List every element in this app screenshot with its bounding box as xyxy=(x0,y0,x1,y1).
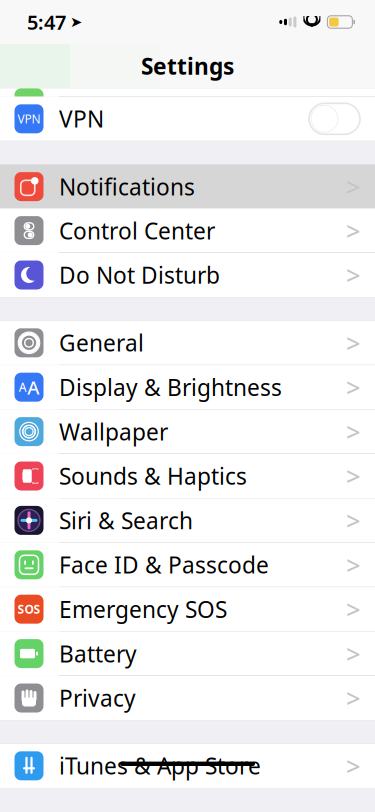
staticText: > xyxy=(346,370,360,404)
button[interactable]: Notifications xyxy=(0,165,375,209)
staticText: > xyxy=(346,749,360,783)
staticText: Notifications xyxy=(59,171,195,202)
staticText: Emergency SOS xyxy=(59,594,227,624)
staticText: > xyxy=(346,637,360,670)
staticText: Control Center xyxy=(59,215,215,246)
button[interactable]: Control Center xyxy=(0,209,375,253)
staticText: Privacy xyxy=(59,683,136,713)
staticText: > xyxy=(346,592,360,626)
staticText: SOS xyxy=(17,601,40,617)
staticText: > xyxy=(346,548,360,582)
staticText: Sounds & Haptics xyxy=(59,461,247,491)
staticText: General xyxy=(59,328,144,358)
staticText: Battery xyxy=(59,638,137,669)
button[interactable]: Face ID & Passcode xyxy=(0,543,375,587)
staticText: A xyxy=(27,375,39,400)
staticText: Settings xyxy=(141,51,234,81)
staticText: > xyxy=(346,170,360,203)
button[interactable]: Siri & Search xyxy=(0,498,375,542)
button[interactable]: Battery xyxy=(0,632,375,676)
button[interactable]: VPN xyxy=(0,97,375,141)
staticText: Face ID & Passcode xyxy=(59,550,269,580)
button[interactable]: General xyxy=(0,321,375,365)
staticText: VPN xyxy=(17,111,40,127)
button[interactable]: Privacy xyxy=(0,676,375,720)
staticText: ➤ xyxy=(70,14,82,30)
button[interactable]: Wallpaper xyxy=(0,410,375,454)
staticText: > xyxy=(346,504,360,537)
staticText: > xyxy=(346,326,360,360)
staticText: > xyxy=(346,681,360,715)
staticText: Display & Brightness xyxy=(59,372,282,402)
staticText: Do Not Disturb xyxy=(59,260,220,290)
staticText: > xyxy=(346,415,360,448)
button[interactable]: A xyxy=(0,365,375,409)
staticText: iTunes & App Store xyxy=(59,751,261,781)
staticText: Wallpaper xyxy=(59,416,168,447)
staticText: > xyxy=(346,258,360,292)
button[interactable]: Do Not Disturb xyxy=(0,253,375,297)
staticText: VPN xyxy=(59,104,104,134)
staticText: > xyxy=(346,214,360,247)
staticText: > xyxy=(346,459,360,493)
button[interactable]: Sounds & Haptics xyxy=(0,454,375,498)
button[interactable]: SOS xyxy=(0,587,375,631)
button[interactable]: iTunes & App Store xyxy=(0,744,375,788)
staticText: 5:47 xyxy=(27,9,66,35)
staticText: Siri & Search xyxy=(59,505,193,535)
staticText: A xyxy=(19,379,27,395)
